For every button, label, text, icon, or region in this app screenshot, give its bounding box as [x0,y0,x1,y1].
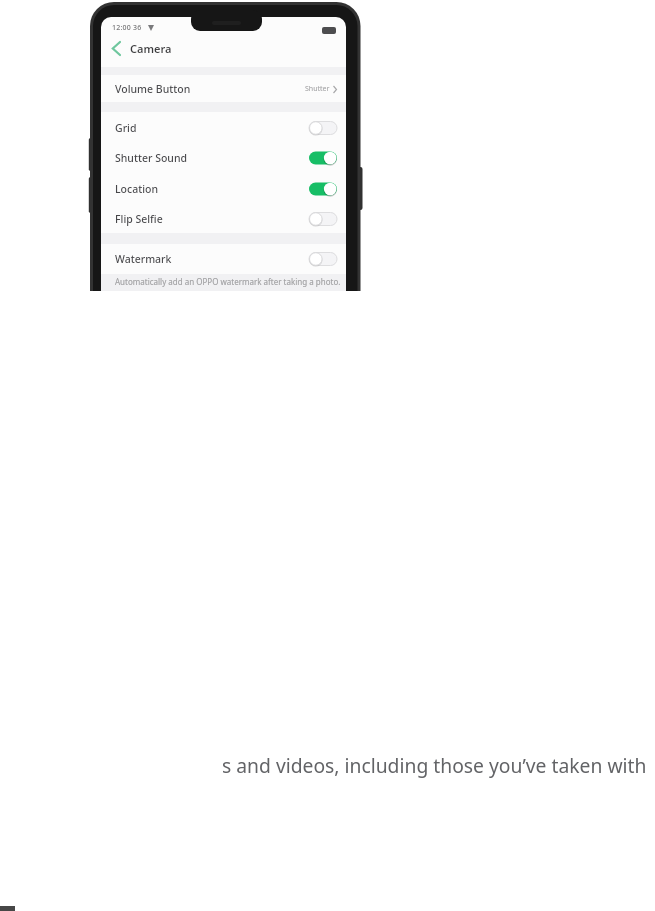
staticText: Flip Selfie [115,212,163,226]
staticText: Camera [130,41,172,56]
staticText: Location [115,182,159,196]
staticText: Volume Button [115,82,191,96]
button[interactable]: Watermark [101,244,346,274]
staticText: 12:00 36 [112,23,142,33]
staticText: Watermark [115,252,172,266]
button[interactable]: Shutter Sound [101,143,346,172]
staticText: Grid [115,121,137,135]
button[interactable]: Volume Button [101,75,346,102]
button[interactable]: Location [101,174,346,203]
button[interactable]: Flip Selfie [101,204,346,233]
button[interactable] [107,37,125,59]
staticText: Automatically add an OPPO watermark afte… [115,276,341,287]
staticText: Shutter Sound [115,151,188,165]
button[interactable]: Grid [101,113,346,142]
staticText: Shutter [305,84,330,94]
staticText: s and videos, including those you’ve tak… [222,752,647,778]
